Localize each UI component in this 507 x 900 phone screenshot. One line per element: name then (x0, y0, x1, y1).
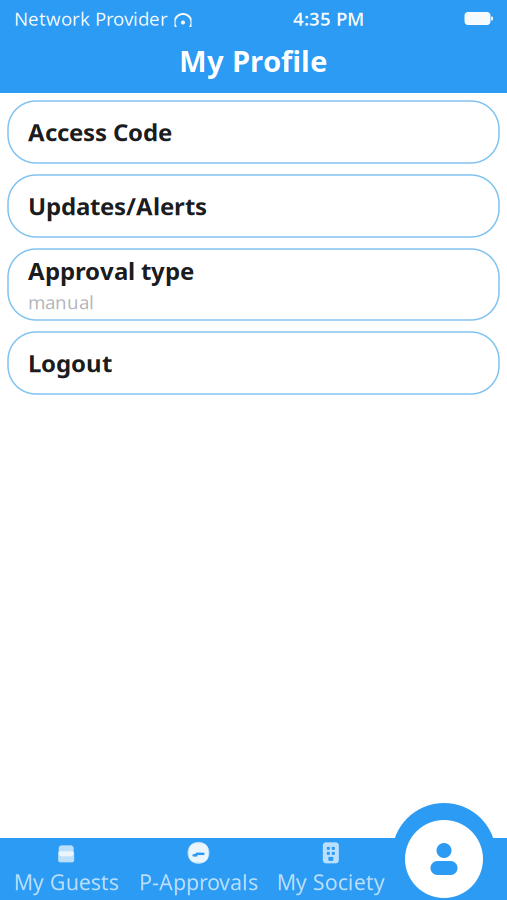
staticText: Network Provider (14, 6, 168, 31)
staticText: Access Code (28, 116, 172, 148)
staticText: Approval type (28, 255, 194, 287)
button[interactable]: P-Approvals (132, 838, 265, 900)
button[interactable]: My Guests (0, 838, 132, 900)
staticText: My Guests (14, 868, 119, 896)
button[interactable]: Approval type (8, 249, 499, 320)
staticText: My Society (277, 868, 385, 896)
button[interactable]: Access Code (8, 101, 499, 163)
button[interactable]: Logout (8, 332, 499, 394)
staticText: P-Approvals (139, 868, 258, 896)
button[interactable]: My Society (265, 838, 397, 900)
staticText: manual (28, 289, 94, 314)
staticText: My Profile (179, 41, 328, 80)
button[interactable]: Updates/Alerts (8, 175, 499, 237)
staticText: 4:35 PM (293, 6, 364, 31)
staticText: Logout (28, 347, 112, 379)
staticText: Updates/Alerts (28, 190, 207, 222)
button[interactable]: My Profile (405, 820, 483, 898)
